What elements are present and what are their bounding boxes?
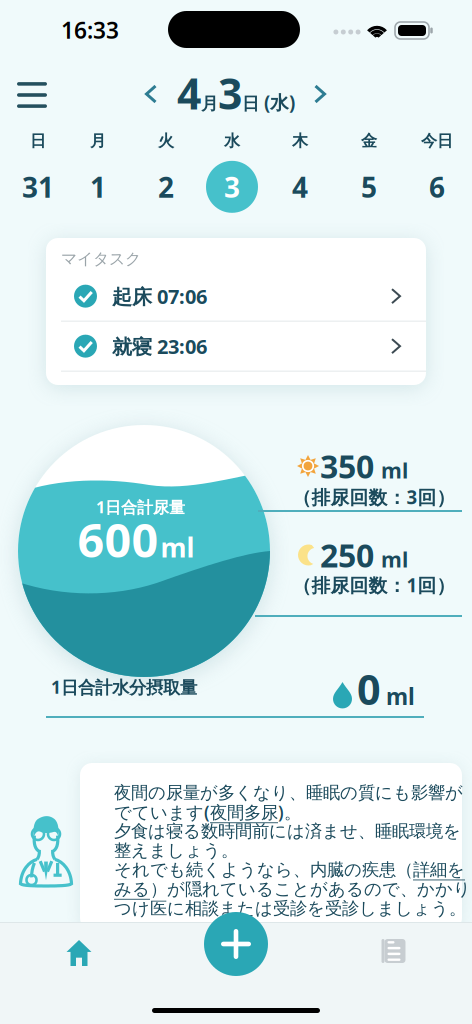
staticText: みる）が隠れていることがあるので、かかり (114, 878, 471, 900)
staticText: ml (381, 545, 408, 573)
button[interactable]: 金 (343, 131, 395, 213)
staticText: 4 (292, 168, 308, 205)
button[interactable]: 就寝 23:06 (46, 322, 426, 371)
staticText: 今日 (421, 131, 453, 151)
button[interactable]: 月 (72, 131, 124, 213)
staticText: （排尿回数：1回） (292, 573, 455, 597)
staticText: 月 (90, 131, 106, 151)
staticText: （排尿回数：3回） (292, 485, 455, 509)
staticText: 1 (90, 168, 106, 205)
staticText: 夕食は寝る数時間前には済ませ、睡眠環境を (114, 821, 461, 842)
staticText: 3 (218, 65, 242, 121)
staticText: 2 (158, 168, 174, 205)
button[interactable]: 記録を追加 (204, 912, 268, 976)
staticText: ml (160, 530, 194, 565)
staticText: つけ医に相談または受診を受診しましょう。 (114, 898, 466, 919)
staticText: マイタスク (61, 249, 141, 269)
staticText: 起床 07:06 (112, 283, 207, 309)
staticText: 31 (22, 168, 54, 205)
staticText: 1日合計尿量 (96, 496, 185, 518)
staticText: 5 (361, 168, 377, 205)
button[interactable]: ホーム (56, 930, 101, 976)
staticText: 0 (357, 662, 381, 716)
staticText: 日 (242, 93, 259, 114)
button[interactable]: 次の日 (309, 80, 330, 108)
staticText: それでも続くようなら、内臓の疾患（詳細を (114, 859, 465, 880)
button[interactable]: 記録一覧 (374, 931, 411, 971)
staticText: でています(夜間多尿)。 (114, 800, 301, 823)
staticText: 1日合計水分摂取量 (51, 675, 197, 698)
staticText: 就寝 23:06 (112, 333, 207, 359)
staticText: 日 (30, 131, 46, 151)
staticText: (水) (259, 90, 295, 115)
staticText: 600 (77, 508, 158, 570)
staticText: 16:33 (61, 15, 119, 45)
staticText: ml (386, 681, 415, 711)
staticText: 3 (224, 168, 240, 205)
button[interactable]: 前の日 (140, 80, 161, 108)
staticText: 月 (201, 93, 218, 114)
staticText: 金 (361, 131, 377, 151)
staticText: 火 (158, 131, 174, 151)
button[interactable]: 日 (12, 131, 64, 213)
staticText: 夜間の尿量が多くなり、睡眠の質にも影響が (114, 782, 463, 803)
button[interactable]: 火 (140, 131, 192, 213)
button[interactable]: 今日 (411, 131, 463, 213)
button[interactable]: メニュー (17, 82, 47, 108)
button[interactable]: 水 (206, 131, 258, 213)
staticText: 整えましょう。 (114, 840, 238, 861)
staticText: 350 (320, 445, 374, 487)
staticText: 6 (429, 168, 445, 205)
staticText: 水 (224, 131, 240, 151)
button[interactable]: 木 (274, 131, 326, 213)
staticText: ml (381, 456, 408, 484)
button[interactable]: 起床 07:06 (46, 272, 426, 321)
staticText: 木 (292, 131, 308, 151)
staticText: 4 (177, 65, 201, 121)
staticText: 250 (320, 534, 374, 576)
